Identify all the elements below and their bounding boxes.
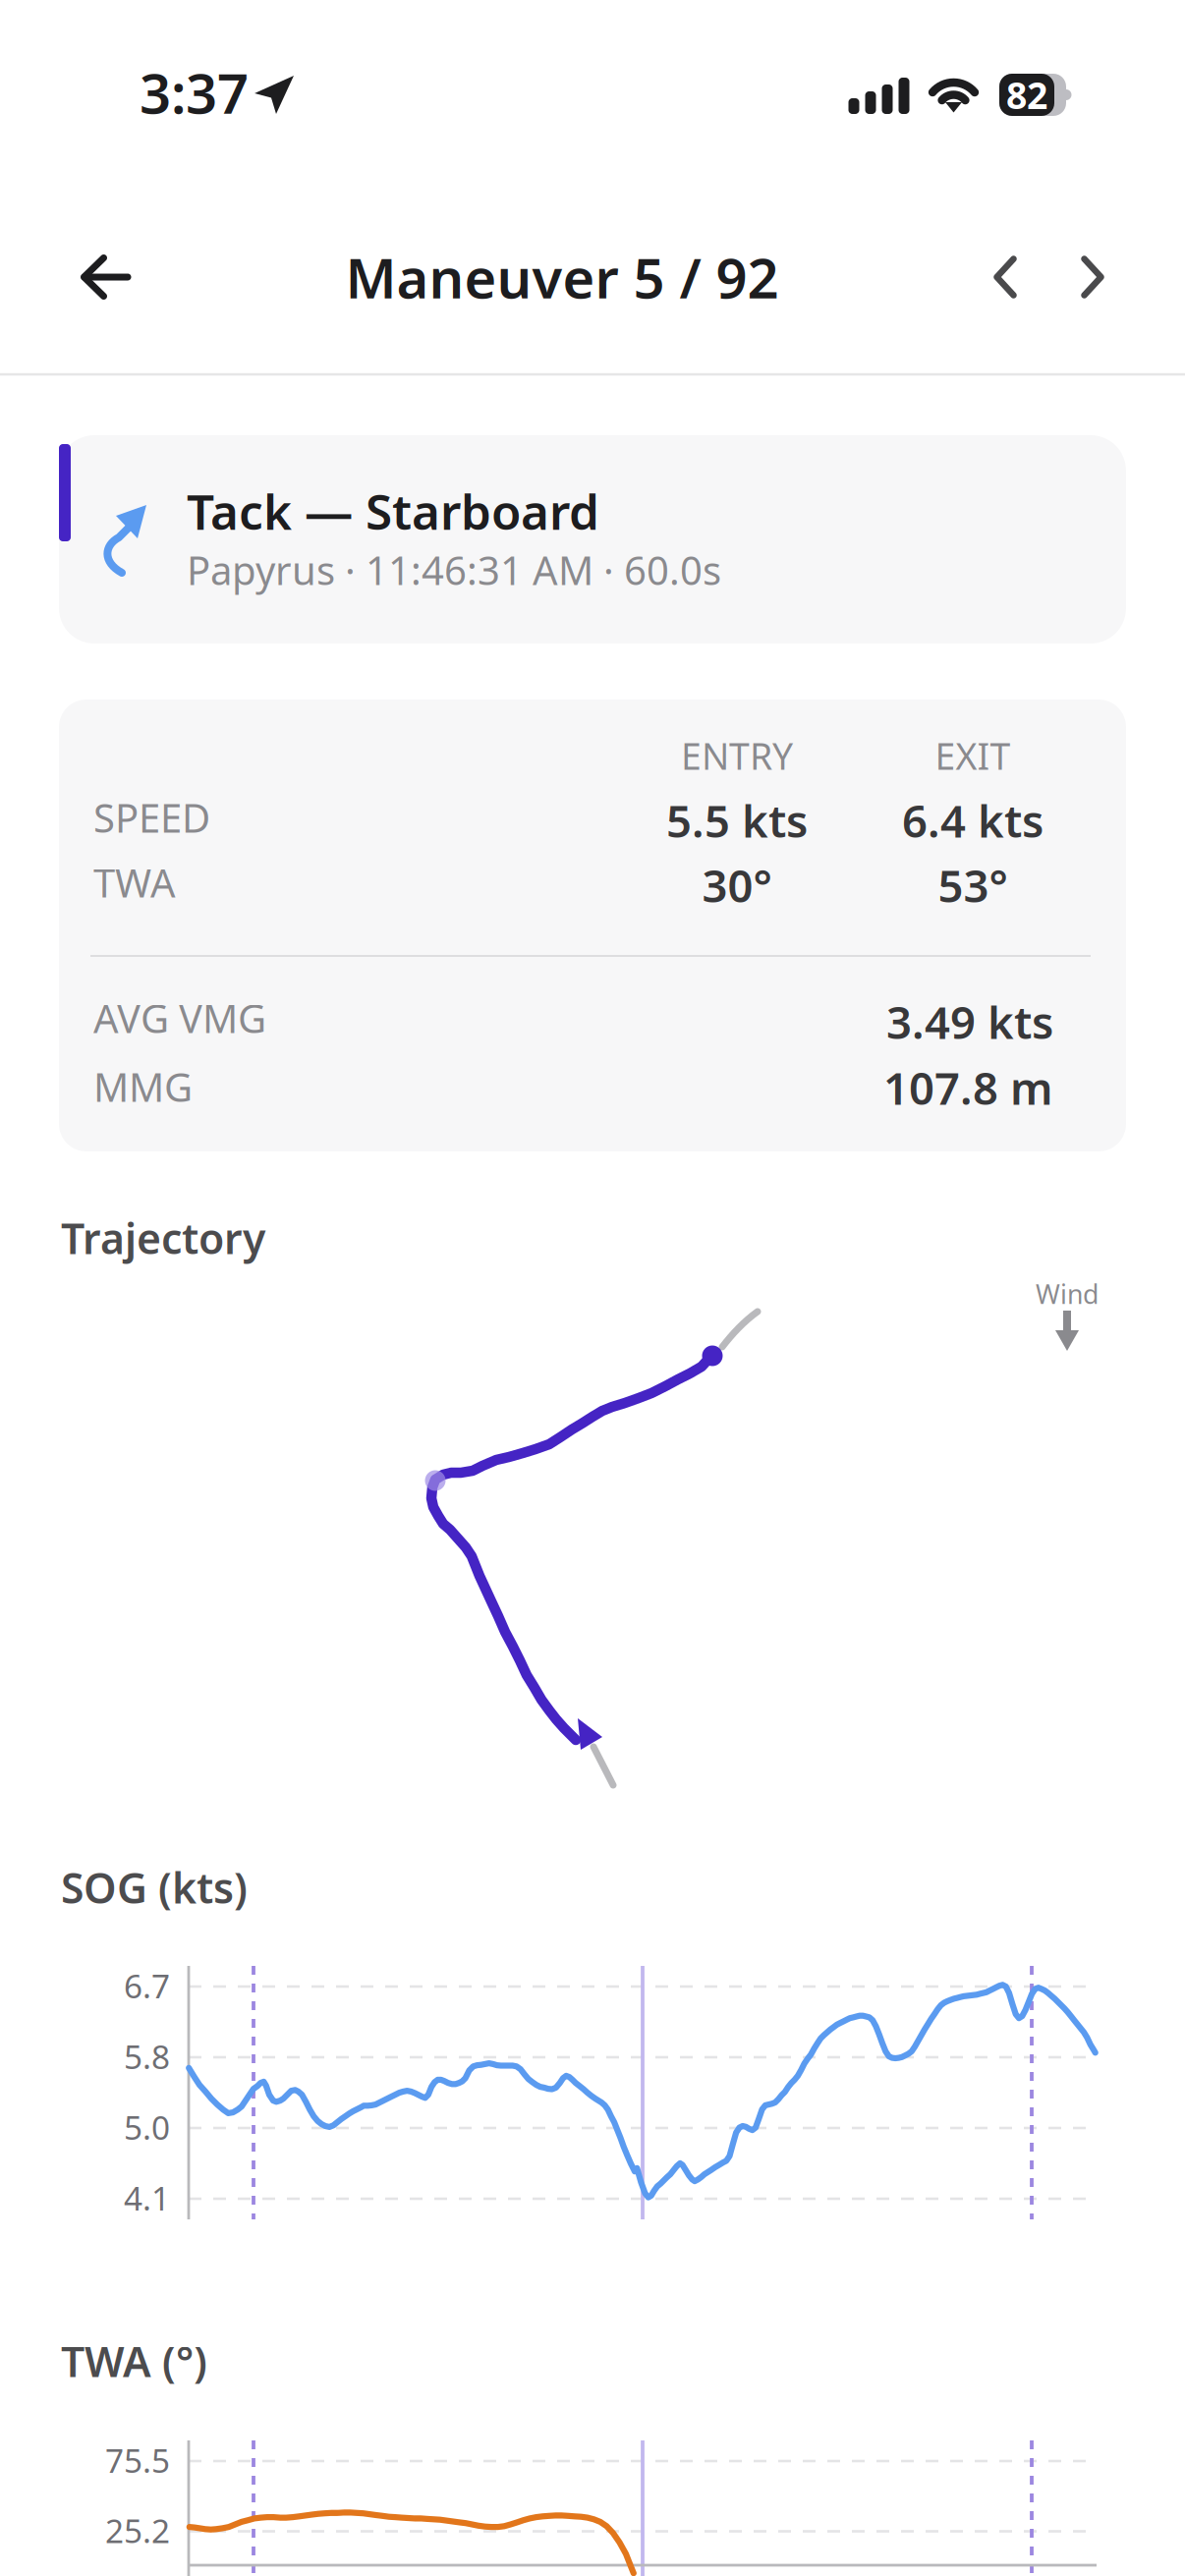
staticText: 4.1 <box>124 2176 170 2220</box>
staticText: 5.5 kts <box>666 791 808 850</box>
staticText: MMG <box>93 1060 193 1113</box>
staticText: Tack — Starboard <box>187 479 599 543</box>
button[interactable]: Next maneuver <box>1048 218 1137 336</box>
staticText: 6.4 kts <box>902 791 1044 850</box>
staticText: 6.7 <box>124 1964 170 2007</box>
staticText: 25.2 <box>105 2509 170 2552</box>
staticText: TWA (°) <box>61 2333 207 2389</box>
staticText: 5.0 <box>124 2105 170 2149</box>
staticText: Trajectory <box>61 1210 265 1266</box>
staticText: 75.5 <box>105 2438 170 2482</box>
button[interactable]: Maneuver 5 / 92 <box>287 218 837 336</box>
staticText: ENTRY <box>681 731 793 780</box>
staticText: SOG (kts) <box>61 1859 248 1915</box>
staticText: AVG VMG <box>93 992 266 1044</box>
staticText: 3.49 kts <box>886 992 1053 1051</box>
staticText: 30° <box>702 856 772 915</box>
staticText: Maneuver 5 / 92 <box>345 241 779 314</box>
staticText: 107.8 m <box>883 1058 1053 1117</box>
staticText: TWA <box>93 856 176 908</box>
staticText: SPEED <box>93 791 210 843</box>
staticText: Wind <box>1036 1277 1099 1311</box>
button[interactable]: Back <box>41 218 169 336</box>
staticText: EXIT <box>935 731 1011 780</box>
staticText: 3:37 <box>140 56 249 129</box>
staticText: 5.8 <box>124 2035 170 2078</box>
staticText: Papyrus · 11:46:31 AM · 60.0s <box>187 544 721 596</box>
staticText: 53° <box>938 856 1008 915</box>
button[interactable]: Previous maneuver <box>961 218 1049 336</box>
staticText: 82 <box>1006 70 1047 119</box>
